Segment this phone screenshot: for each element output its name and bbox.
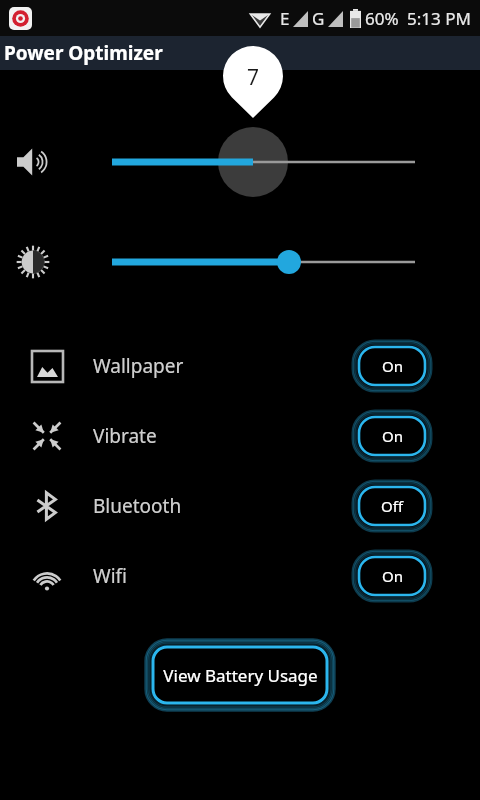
staticText: On [382, 566, 403, 586]
button[interactable]: Vibrate [0, 401, 480, 471]
staticText: Wallpaper [93, 353, 184, 379]
staticText: E [280, 7, 290, 30]
button[interactable]: Wallpaper [0, 331, 480, 401]
staticText: Wifi [93, 563, 128, 589]
staticText: Off [381, 496, 404, 516]
button[interactable]: Wifi [0, 541, 480, 611]
button[interactable]: On [353, 411, 431, 461]
staticText: Vibrate [93, 423, 157, 449]
staticText: Bluetooth [93, 493, 182, 519]
staticText: 7 [247, 63, 260, 92]
button[interactable]: On [353, 551, 431, 601]
button[interactable]: On [353, 341, 431, 391]
staticText: 60% [365, 7, 399, 30]
button[interactable]: Bluetooth [0, 471, 480, 541]
staticText: 5:13 PM [407, 7, 471, 30]
staticText: G [312, 7, 325, 30]
button[interactable]: View Battery Usage [145, 639, 335, 711]
button[interactable]: Off [353, 481, 431, 531]
staticText: On [382, 426, 403, 446]
staticText: View Battery Usage [163, 664, 318, 687]
staticText: On [382, 356, 403, 376]
staticText: Power Optimizer [4, 40, 163, 66]
